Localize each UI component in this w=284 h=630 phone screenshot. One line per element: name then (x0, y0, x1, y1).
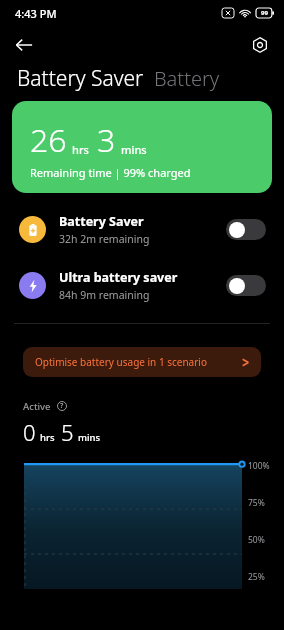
staticText: 5 (61, 417, 74, 447)
staticText: Ultra battery saver (59, 269, 178, 286)
button[interactable]: 26 (12, 101, 272, 193)
staticText: hrs (40, 431, 55, 444)
staticText: 4:43 PM (15, 6, 57, 21)
staticText: Battery Saver (59, 213, 144, 230)
staticText: Active (23, 400, 51, 413)
staticText: 26 (30, 118, 67, 162)
staticText: Optimise battery usage in 1 scenario (35, 355, 241, 369)
staticText: 3 (97, 118, 116, 162)
staticText: 0 (23, 417, 36, 447)
button[interactable]: Optimise battery usage in 1 scenario (23, 347, 261, 377)
button[interactable]: Settings (242, 27, 278, 63)
staticText: 75% (248, 497, 265, 509)
button[interactable]: Back (6, 27, 42, 63)
staticText: 25% (248, 571, 265, 583)
staticText: mins (78, 431, 101, 444)
button[interactable]: Toggle Battery Saver (226, 219, 266, 240)
staticText: 50% (248, 534, 265, 546)
button[interactable]: Battery Saver (17, 64, 144, 93)
button[interactable]: Battery (154, 65, 220, 92)
staticText: hrs (72, 142, 89, 157)
button[interactable]: Ultra battery saver (0, 263, 284, 307)
staticText: 99 (261, 9, 268, 17)
button[interactable]: Toggle Ultra battery saver (226, 275, 266, 296)
staticText: 84h 9m remaining (59, 288, 150, 302)
staticText: ? (60, 401, 64, 411)
staticText: Remaining time | 99% charged (30, 165, 191, 180)
staticText: mins (121, 142, 147, 157)
staticText: 100% (248, 460, 270, 472)
button[interactable]: Battery Saver (0, 207, 284, 251)
staticText: 32h 2m remaining (59, 232, 150, 246)
button[interactable]: Help about Active time (55, 399, 69, 413)
